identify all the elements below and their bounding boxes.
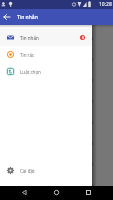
button[interactable]: Back <box>0 10 14 24</box>
button[interactable]: Home <box>49 186 64 199</box>
staticText: Tin nhắn <box>17 14 38 21</box>
staticText: Tin nhắn <box>20 35 39 41</box>
staticText: Luật chọn <box>20 69 41 75</box>
staticText: 8 <box>82 36 84 40</box>
button[interactable]: Recent apps <box>81 186 96 199</box>
staticText: Tin rác <box>20 52 35 58</box>
button[interactable]: Luật chọn <box>0 63 92 80</box>
staticText: Cài đặt <box>20 168 35 174</box>
staticText: 10:28 <box>99 1 112 8</box>
button[interactable]: Tin rác <box>0 46 92 63</box>
button[interactable]: Tin nhắn <box>0 29 92 46</box>
button[interactable]: Cài đặt <box>0 162 92 179</box>
button[interactable]: Back <box>17 186 32 199</box>
